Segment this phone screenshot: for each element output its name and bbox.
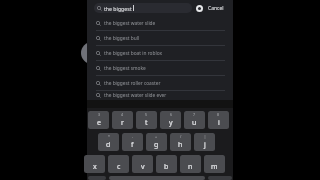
staticText: x — [93, 162, 97, 172]
staticText: i — [218, 118, 220, 128]
button[interactable]: Cancel — [206, 4, 226, 13]
staticText: the biggest water slide ever — [104, 92, 167, 99]
staticText: d — [106, 140, 111, 150]
button[interactable]: 8 — [208, 111, 229, 129]
staticText: 5 — [145, 112, 148, 117]
staticText: b — [164, 162, 169, 172]
staticText: 8 — [217, 112, 220, 117]
button[interactable]: 7 — [184, 111, 205, 129]
staticText: - — [132, 134, 134, 139]
button[interactable]: x — [84, 155, 105, 173]
button[interactable]: Search — [208, 176, 232, 180]
staticText: h — [178, 140, 183, 150]
button[interactable]: * — [98, 133, 119, 151]
button[interactable]: m — [204, 155, 225, 173]
staticText: n — [188, 162, 193, 172]
button[interactable]: v — [132, 155, 153, 173]
staticText: c — [117, 162, 121, 172]
staticText: the biggest bull — [104, 35, 140, 42]
staticText: 3 — [98, 112, 101, 117]
button[interactable]: c — [108, 155, 129, 173]
button[interactable]: n — [180, 155, 201, 173]
button[interactable]: + — [146, 133, 167, 151]
staticText: the biggest roller coaster — [104, 80, 161, 87]
button[interactable]: b — [156, 155, 177, 173]
staticText: / — [180, 134, 182, 139]
staticText: j — [204, 140, 206, 150]
button[interactable]: 4 — [112, 111, 133, 129]
staticText: g — [154, 140, 159, 150]
staticText: y — [169, 118, 173, 128]
button[interactable]: the biggest water slide — [87, 16, 233, 30]
staticText: 7 — [193, 112, 196, 117]
button[interactable]: Symbols — [88, 176, 106, 180]
staticText: the biggest water slide — [104, 20, 156, 27]
button[interactable]: the biggest — [94, 3, 192, 13]
staticText: + — [155, 134, 158, 139]
button[interactable]: the biggest boat in roblox — [87, 46, 233, 60]
staticText: the biggest boat in roblox — [104, 50, 163, 57]
staticText: * — [108, 134, 110, 139]
button[interactable]: the biggest bull — [87, 31, 233, 45]
button[interactable]: 5 — [136, 111, 157, 129]
button[interactable]: 3 — [88, 111, 109, 129]
staticText: the biggest smoke — [104, 65, 146, 72]
staticText: 6 — [170, 112, 173, 117]
button[interactable]: Space — [109, 176, 205, 180]
staticText: | — [204, 134, 206, 139]
staticText: m — [211, 162, 218, 172]
button[interactable]: the biggest smoke — [87, 61, 233, 75]
staticText: f — [131, 140, 134, 150]
button[interactable]: | — [194, 133, 215, 151]
button[interactable]: the biggest water slide ever — [87, 91, 233, 100]
staticText: v — [141, 162, 145, 172]
button[interactable]: - — [122, 133, 143, 151]
staticText: 4 — [121, 112, 124, 117]
staticText: e — [97, 118, 101, 128]
button[interactable]: Voice search — [195, 4, 204, 13]
button[interactable]: the biggest roller coaster — [87, 76, 233, 90]
staticText: u — [192, 118, 197, 128]
staticText: the biggest — [104, 5, 132, 12]
button[interactable]: 6 — [160, 111, 181, 129]
staticText: Cancel — [208, 5, 224, 12]
button[interactable]: / — [170, 133, 191, 151]
staticText: r — [121, 118, 124, 128]
staticText: t — [145, 118, 148, 128]
